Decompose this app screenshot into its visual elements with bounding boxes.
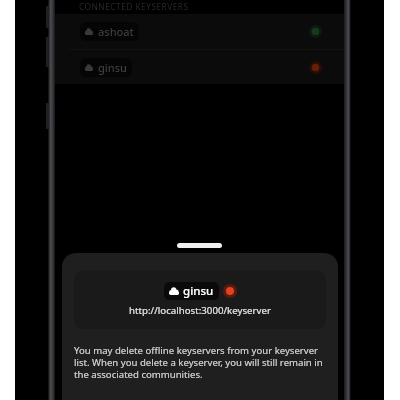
button[interactable]: ashoat (55, 14, 344, 49)
staticText: ginsu (98, 60, 127, 75)
staticText: You may delete offline keyservers from y… (74, 344, 323, 381)
button[interactable]: ginsu (55, 50, 344, 84)
staticText: http://localhost:3000/keyserver (74, 304, 326, 317)
staticText: ginsu (183, 283, 214, 299)
button[interactable]: Drag handle (177, 243, 222, 248)
staticText: ashoat (98, 24, 134, 39)
button[interactable]: ginsu (74, 270, 326, 329)
staticText: CONNECTED KEYSERVERS (79, 1, 189, 12)
